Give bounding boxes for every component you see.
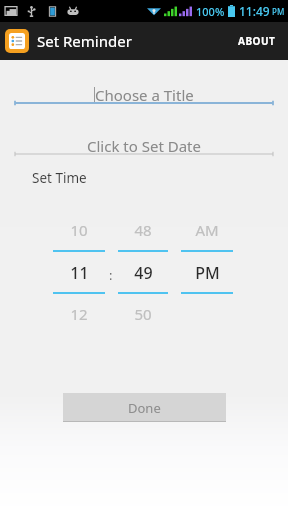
button[interactable]: AM or PM xyxy=(181,205,233,345)
staticText: 11 xyxy=(70,262,89,284)
staticText: Click to Set Date xyxy=(87,136,201,156)
button[interactable]: ABOUT xyxy=(226,22,288,60)
button[interactable]: Minute xyxy=(118,205,168,345)
staticText: ABOUT xyxy=(238,34,276,48)
button[interactable]: Done xyxy=(63,393,226,422)
staticText: 50 xyxy=(134,304,152,324)
staticText: 11:49 xyxy=(239,3,270,19)
staticText: AM xyxy=(195,220,219,240)
button[interactable]: Hour xyxy=(53,205,105,345)
staticText: 49 xyxy=(134,262,153,284)
staticText: Set Time xyxy=(32,169,87,187)
staticText: PM xyxy=(195,262,220,284)
staticText: Set Reminder xyxy=(37,31,132,51)
button[interactable]: Set Reminder app icon xyxy=(5,29,29,53)
staticText: : xyxy=(109,266,113,284)
staticText: 48 xyxy=(134,220,152,240)
staticText: 12 xyxy=(70,304,88,324)
staticText: Choose a Title xyxy=(95,85,194,105)
staticText: PM xyxy=(272,6,285,17)
staticText: Done xyxy=(128,399,161,417)
button[interactable]: Choose a Title xyxy=(0,82,288,108)
staticText: 100% xyxy=(196,4,225,19)
staticText: 10 xyxy=(70,220,88,240)
button[interactable]: Click to Set Date xyxy=(0,133,288,159)
